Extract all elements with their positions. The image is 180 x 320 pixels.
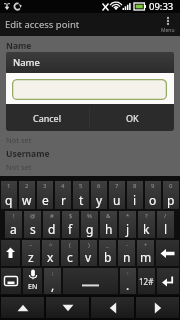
- button[interactable]: Username: [0, 148, 180, 175]
- button[interactable]: ~: [22, 240, 40, 266]
- button[interactable]: Right: [136, 297, 179, 318]
- button[interactable]: Name: [0, 40, 180, 67]
- staticText: 1: [7, 182, 11, 190]
- staticText: e: [42, 192, 49, 208]
- button[interactable]: _: [99, 240, 116, 266]
- staticText: /: [164, 212, 167, 220]
- staticText: EN: [28, 282, 38, 292]
- staticText: ?: [145, 212, 148, 220]
- staticText: %: [87, 212, 92, 220]
- button[interactable]: #: [43, 211, 60, 238]
- staticText: 12#: [139, 276, 154, 287]
- staticText: ~: [29, 241, 33, 249]
- button[interactable]: Left: [91, 297, 134, 318]
- staticText: 0: [169, 182, 173, 190]
- button[interactable]: Menu: [156, 13, 180, 36]
- staticText: i: [133, 192, 137, 208]
- button[interactable]: OK: [90, 104, 174, 131]
- button[interactable]: 8: [127, 181, 143, 209]
- button[interactable]: Shift: [1, 240, 20, 266]
- button[interactable]: 12#: [138, 268, 155, 294]
- staticText: Not set: [6, 162, 32, 172]
- button[interactable]: ?: [138, 211, 155, 238]
- button[interactable]: %: [81, 211, 98, 238]
- staticText: a: [10, 221, 17, 237]
- staticText: Name: [13, 56, 40, 69]
- staticText: _: [106, 241, 109, 249]
- staticText: u: [113, 192, 121, 208]
- staticText: 6: [97, 182, 101, 190]
- staticText: (: [69, 241, 71, 249]
- button[interactable]: Enter: [157, 268, 179, 294]
- staticText: Cancel: [33, 112, 62, 124]
- button[interactable]: $: [62, 211, 79, 238]
- staticText: !: [13, 212, 15, 220]
- staticText: s: [30, 221, 36, 237]
- staticText: t: [79, 192, 84, 208]
- staticText: *: [126, 212, 130, 220]
- button[interactable]: [12, 79, 167, 100]
- button[interactable]: ;: [44, 268, 61, 294]
- button[interactable]: 4: [55, 181, 71, 209]
- staticText: n: [123, 249, 131, 265]
- staticText: Not set: [6, 135, 32, 145]
- button[interactable]: Port: [0, 121, 180, 148]
- staticText: w: [22, 192, 32, 208]
- button[interactable]: Cancel: [6, 104, 89, 131]
- button[interactable]: Down: [46, 297, 89, 318]
- button[interactable]: Space: [63, 268, 118, 294]
- button[interactable]: -: [118, 240, 135, 266]
- staticText: 4: [61, 182, 65, 190]
- button[interactable]: ): [80, 240, 97, 266]
- button[interactable]: 3: [37, 181, 53, 209]
- button[interactable]: 2: [19, 181, 35, 209]
- staticText: c: [67, 249, 73, 265]
- staticText: OK: [126, 112, 139, 124]
- staticText: Port: [6, 121, 25, 133]
- button[interactable]: *: [119, 211, 136, 238]
- button[interactable]: +: [137, 240, 154, 266]
- staticText: .: [126, 277, 130, 293]
- button[interactable]: :: [120, 268, 136, 294]
- staticText: +: [144, 241, 148, 249]
- button[interactable]: /: [157, 211, 174, 238]
- staticText: z: [28, 249, 34, 265]
- button[interactable]: Backspace: [156, 240, 179, 266]
- button[interactable]: 9: [145, 181, 161, 209]
- button[interactable]: 5: [73, 181, 89, 209]
- button[interactable]: 7: [109, 181, 125, 209]
- staticText: 09:33: [149, 0, 174, 13]
- button[interactable]: !: [5, 211, 22, 238]
- staticText: Proxy: [6, 94, 30, 106]
- staticText: h: [105, 221, 113, 237]
- staticText: Username: [6, 148, 50, 160]
- button[interactable]: ^: [42, 240, 59, 266]
- button[interactable]: Up: [1, 297, 44, 318]
- button[interactable]: (: [61, 240, 78, 266]
- staticText: &: [106, 212, 111, 220]
- staticText: 8: [133, 182, 137, 190]
- staticText: 7: [115, 182, 119, 190]
- button[interactable]: @: [24, 211, 41, 238]
- staticText: Name: [6, 40, 32, 52]
- button[interactable]: 6: [91, 181, 107, 209]
- staticText: r: [61, 192, 66, 208]
- staticText: l: [164, 221, 168, 237]
- button[interactable]: 0: [163, 181, 179, 209]
- button[interactable]: 1: [1, 181, 17, 209]
- button[interactable]: APN: [0, 67, 180, 94]
- staticText: -: [126, 241, 128, 249]
- staticText: 9: [151, 182, 155, 190]
- button[interactable]: Voice input: [23, 268, 42, 294]
- button[interactable]: &: [100, 211, 117, 238]
- staticText: p: [167, 192, 175, 208]
- staticText: d: [48, 221, 56, 237]
- staticText: Not set: [6, 54, 32, 64]
- button[interactable]: Keyboard settings: [1, 268, 21, 294]
- button[interactable]: Proxy: [0, 94, 180, 121]
- staticText: v: [85, 249, 92, 265]
- staticText: ^: [49, 241, 53, 249]
- staticText: q: [5, 192, 13, 208]
